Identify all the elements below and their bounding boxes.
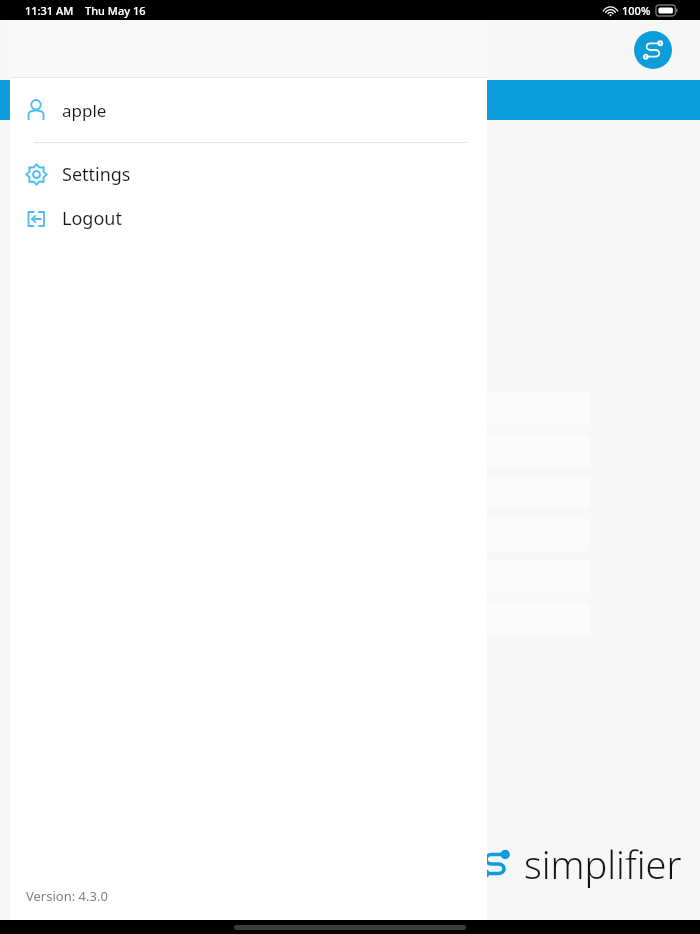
- staticText: Version: 4.3.0: [26, 887, 108, 905]
- button[interactable]: Logout: [10, 196, 487, 241]
- staticText: 11:31 AM: [25, 3, 74, 18]
- staticText: Settings: [62, 162, 131, 187]
- staticText: Thu May 16: [85, 3, 146, 18]
- button[interactable]: Settings: [10, 153, 487, 196]
- staticText: simplifier: [524, 838, 682, 890]
- button[interactable]: [0, 80, 700, 120]
- button[interactable]: Simplifier account: [634, 31, 672, 69]
- staticText: Logout: [62, 206, 122, 231]
- button[interactable]: apple: [10, 78, 487, 142]
- staticText: apple: [62, 99, 107, 122]
- staticText: 100%: [622, 3, 651, 18]
